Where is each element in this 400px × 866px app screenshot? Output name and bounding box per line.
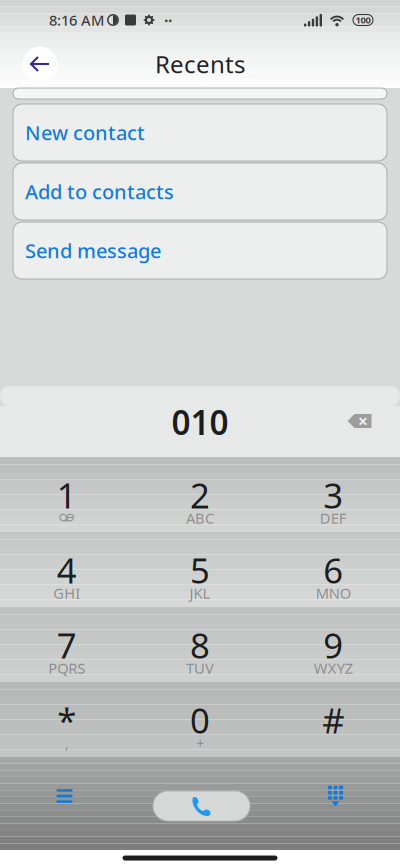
staticText: 4 [57,547,77,593]
staticText: + [196,733,204,753]
staticText: , [65,733,69,753]
button[interactable]: 3 [267,457,400,532]
staticText: 6 [323,547,343,593]
button[interactable]: 6 [267,532,400,607]
staticText: 9 [323,622,343,668]
button[interactable]: 4 [0,532,133,607]
button[interactable]: # [267,682,400,757]
staticText: 0 [190,697,210,743]
staticText: * [57,697,76,743]
staticText: 2 [190,472,210,518]
staticText: New contact [25,119,145,146]
button[interactable]: Add to contacts [13,163,387,220]
staticText: 1 [57,472,77,518]
staticText: MNO [316,583,351,603]
button[interactable]: 5 [133,532,267,607]
button[interactable]: Keypad [313,774,357,818]
staticText: PQRS [48,658,85,678]
button[interactable]: 7 [0,607,133,682]
staticText: ·· [164,9,172,31]
staticText: ABC [186,508,214,528]
button[interactable]: 8 [133,607,267,682]
button[interactable]: 0 [133,682,267,757]
button[interactable]: New contact [13,104,387,161]
staticText: 3 [323,472,343,518]
staticText: JKL [189,583,210,603]
staticText: GHI [53,583,80,603]
button[interactable]: 2 [133,457,267,532]
button[interactable]: 1 [0,457,133,532]
staticText: Add to contacts [25,178,174,205]
staticText: DEF [320,508,347,528]
button[interactable]: Call log options [42,774,86,818]
staticText: 010 [171,400,228,444]
button[interactable]: Call [153,791,250,821]
staticText: × [358,409,368,432]
staticText: Send message [25,237,161,264]
button[interactable]: Send message [13,222,387,279]
staticText: 7 [57,622,77,668]
staticText: TUV [186,658,214,678]
staticText: 8 [190,622,210,668]
button[interactable]: 9 [267,607,400,682]
staticText: 8:16 AM [49,10,104,30]
staticText: 100 [355,14,370,26]
staticText: # [322,697,344,743]
staticText: 5 [190,547,210,593]
staticText: WXYZ [314,658,353,678]
button[interactable]: Back [18,42,62,86]
button[interactable]: * [0,682,133,757]
button[interactable]: Delete [340,401,380,441]
staticText: Recents [155,48,245,80]
